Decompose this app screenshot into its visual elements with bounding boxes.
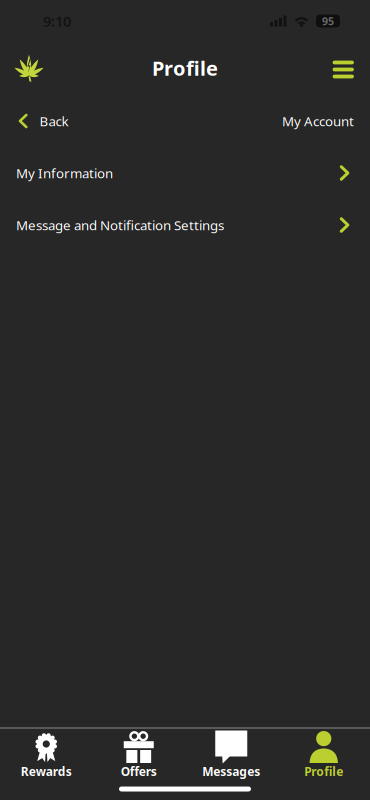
staticText: Messages [202,763,260,779]
button[interactable] [332,57,370,78]
staticText: Profile [152,55,218,81]
staticText: My Information [16,164,113,182]
staticText: My Account [282,112,354,130]
staticText: Back [39,112,68,130]
staticText: Message and Notification Settings [16,216,224,234]
button[interactable]: My Account [282,112,354,130]
button[interactable]: Back [19,112,68,130]
staticText: 95 [322,14,334,28]
staticText: Offers [121,763,157,779]
button[interactable] [0,54,43,82]
button[interactable]: Profile [277,730,370,786]
staticText: Rewards [21,763,72,779]
button[interactable]: My Information [0,147,370,199]
button[interactable]: Message and Notification Settings [0,199,370,251]
staticText: 9:10 [43,11,71,31]
staticText: Profile [304,763,343,779]
button[interactable]: Messages [185,730,277,786]
button[interactable]: Rewards [0,730,92,786]
button[interactable]: Offers [92,730,185,786]
